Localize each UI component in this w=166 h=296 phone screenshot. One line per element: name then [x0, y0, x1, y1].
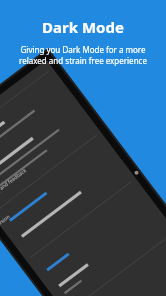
staticText: Version	[0, 213, 12, 230]
staticText: About	[0, 207, 1, 220]
button[interactable]: Dark mode preview	[0, 106, 166, 296]
staticText: Giving you Dark Mode for a more relaxed …	[19, 44, 147, 66]
staticText: Give rating and feedback	[0, 167, 28, 208]
staticText: Dark Mode	[42, 17, 124, 37]
